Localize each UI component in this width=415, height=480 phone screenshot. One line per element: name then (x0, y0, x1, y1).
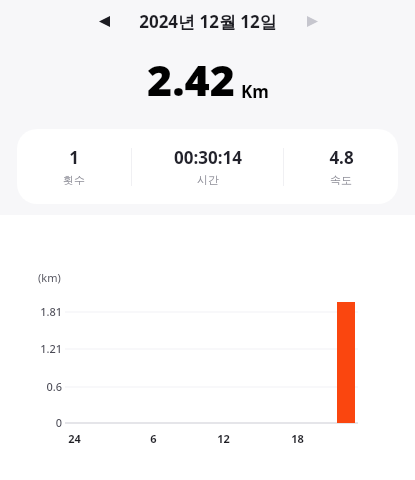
staticText: 0 (55, 415, 62, 430)
button[interactable]: Previous day (89, 6, 119, 36)
staticText: 횟수 (63, 173, 85, 187)
staticText: 속도 (330, 173, 352, 187)
staticText: 2024년 12월 12일 (139, 10, 277, 33)
button[interactable]: 00:30:14 (132, 129, 283, 204)
staticText: 0.6 (46, 379, 62, 394)
staticText: 6 (150, 431, 157, 446)
staticText: 1.81 (40, 304, 62, 319)
staticText: 18 (291, 431, 304, 446)
staticText: (km) (38, 270, 61, 285)
button[interactable]: 1 (17, 129, 131, 204)
button[interactable]: Next day (297, 6, 327, 36)
staticText: 00:30:14 (174, 146, 242, 169)
staticText: 24 (68, 431, 81, 446)
staticText: 시간 (197, 173, 219, 187)
staticText: 4.8 (329, 146, 354, 169)
staticText: 1.21 (40, 341, 62, 356)
staticText: 2.42 (147, 50, 236, 109)
staticText: Km (241, 80, 269, 103)
staticText: 12 (217, 431, 230, 446)
staticText: 1 (69, 146, 79, 169)
button[interactable]: 4.8 (284, 129, 398, 204)
